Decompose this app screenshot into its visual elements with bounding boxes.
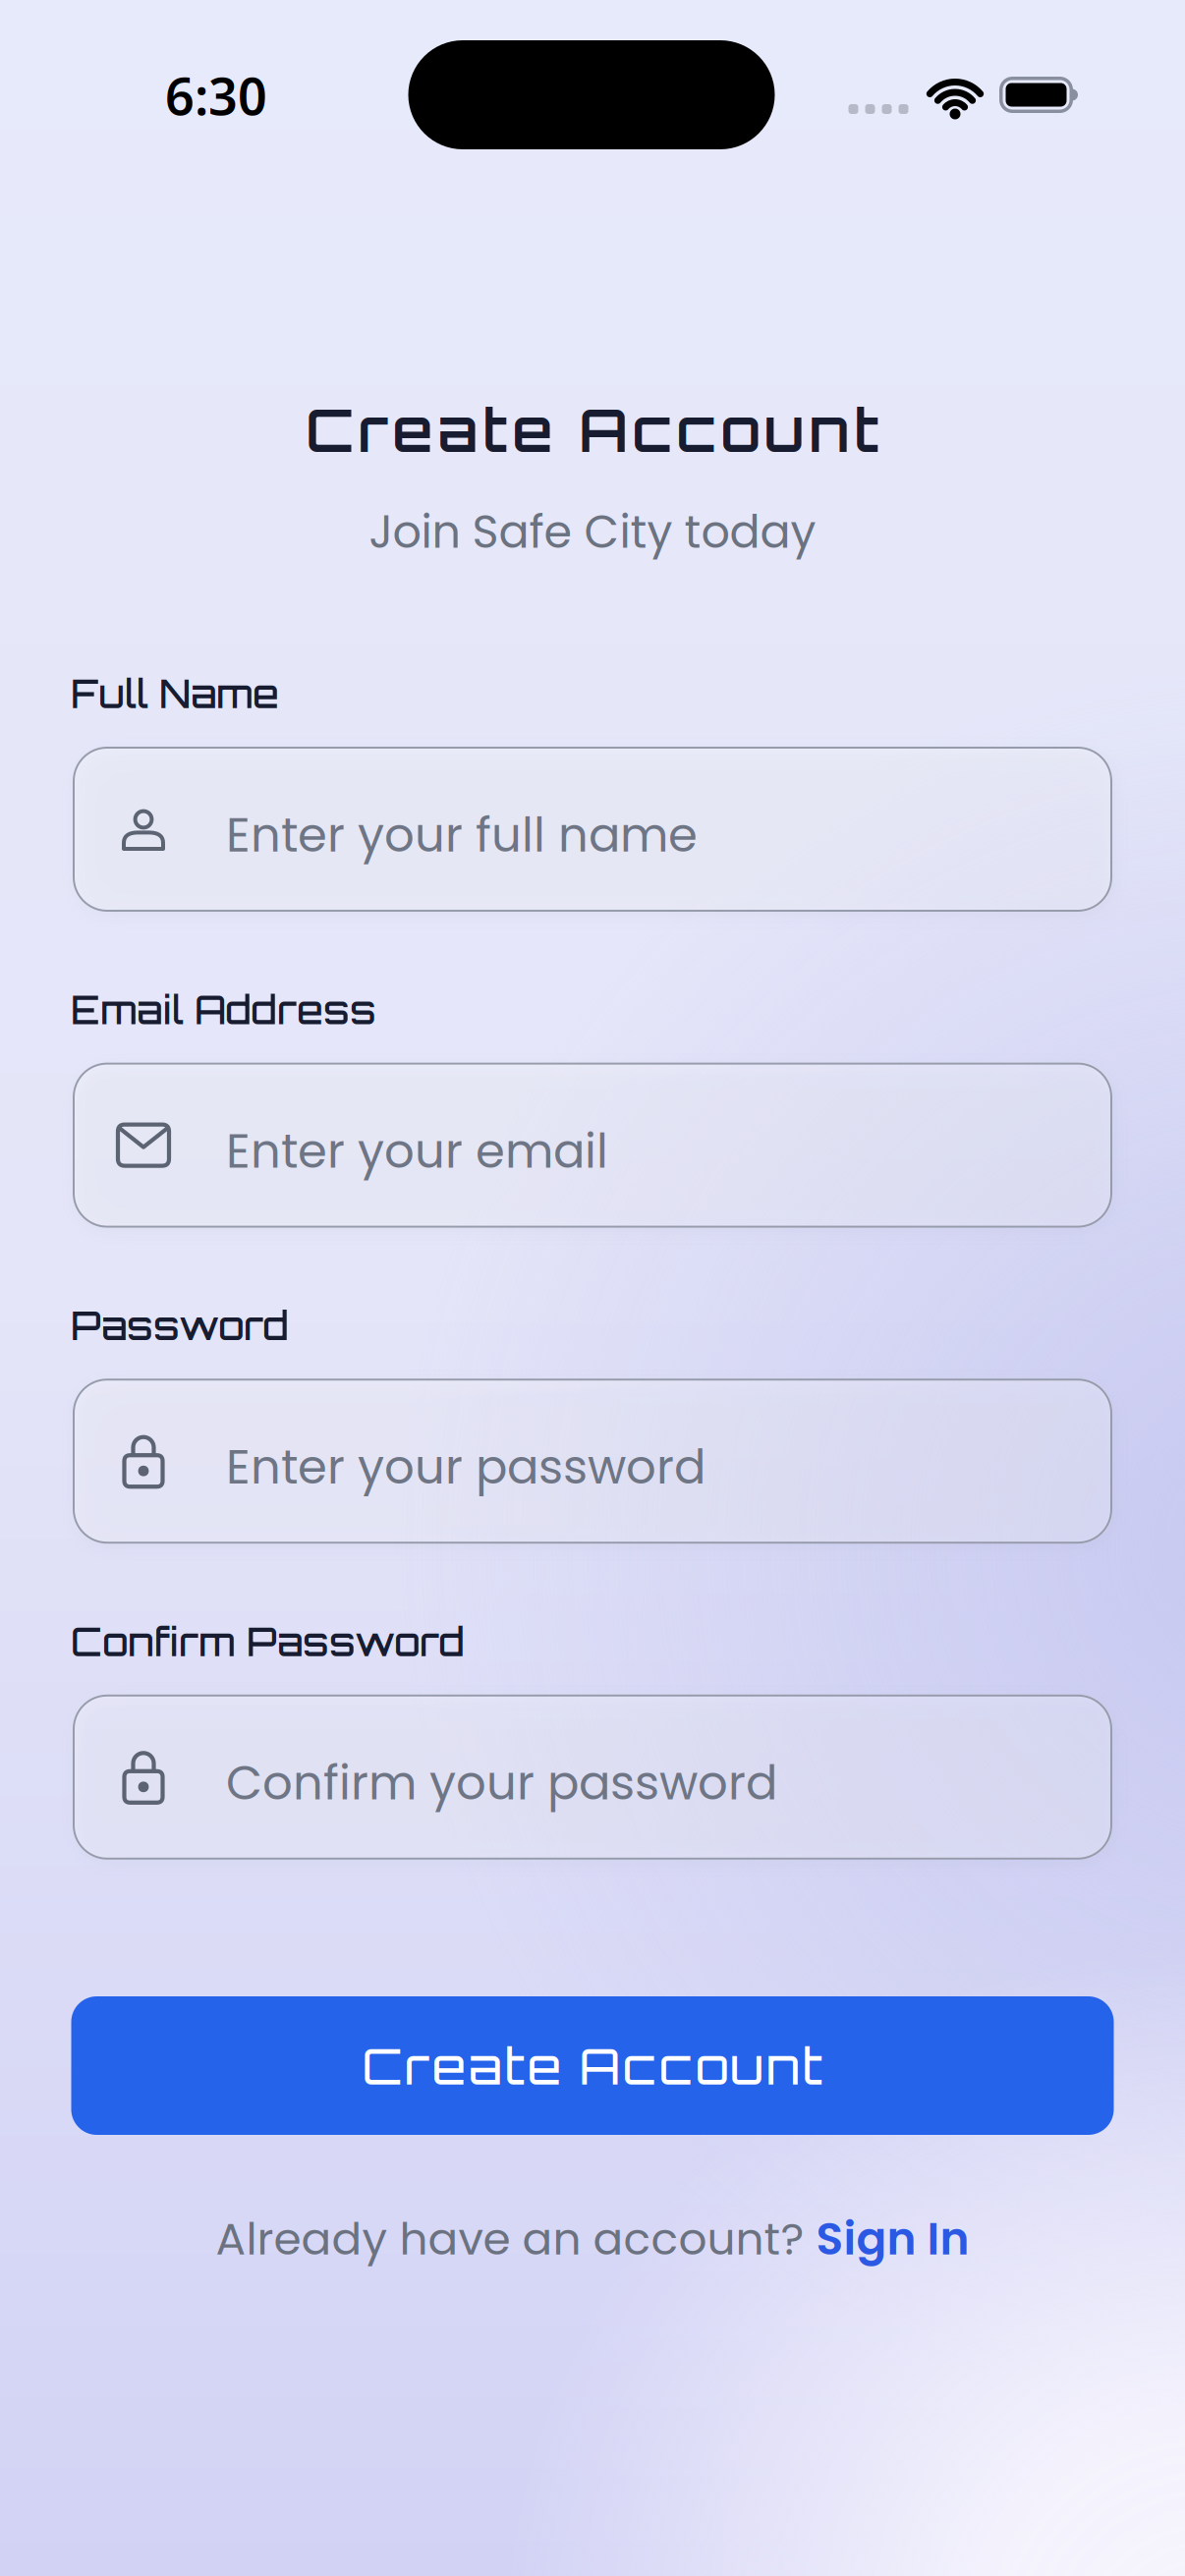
staticText: Enter your full name [226, 802, 698, 868]
staticText: Enter your password [226, 1434, 705, 1500]
staticText: Enter your email [226, 1118, 608, 1184]
staticText: Confirm your password [226, 1750, 777, 1816]
staticText: Confirm Password [71, 1618, 465, 1665]
button[interactable]: Create Account [71, 1996, 1114, 2135]
button[interactable]: Enter your password [73, 1379, 1112, 1544]
button[interactable]: Sign In [816, 2208, 969, 2270]
staticText: Email Address [71, 986, 376, 1033]
button[interactable]: Confirm your password [73, 1695, 1112, 1860]
staticText: Sign In [816, 2208, 969, 2270]
staticText: Create Account [362, 2035, 823, 2096]
staticText: Create Account [306, 392, 879, 466]
staticText: Already have an account? [216, 2208, 816, 2270]
staticText: Full Name [71, 670, 279, 717]
staticText: 6:30 [165, 61, 267, 129]
staticText: Join Safe City today [369, 500, 816, 564]
button[interactable]: Enter your full name [73, 747, 1112, 912]
button[interactable]: Enter your email [73, 1063, 1112, 1228]
staticText: Password [71, 1302, 289, 1349]
